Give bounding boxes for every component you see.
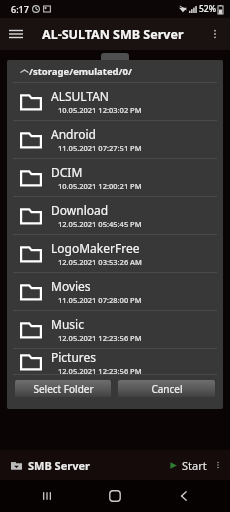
button[interactable]: Recent apps xyxy=(25,480,69,512)
staticText: 6:17 xyxy=(11,3,29,15)
staticText: 12.05.2021 05:45:45 PM xyxy=(58,219,142,229)
staticText: 12.05.2021 12:23:56 PM xyxy=(58,366,142,374)
staticText: Start xyxy=(182,458,207,473)
button[interactable]: Pictures xyxy=(7,349,223,374)
button[interactable]: ALSULTAN xyxy=(7,83,223,120)
button[interactable]: Download xyxy=(7,197,223,234)
button[interactable]: Cancel xyxy=(118,380,215,397)
staticText: 12.05.2021 12:23:56 PM xyxy=(58,333,142,343)
staticText: 11.05.2021 07:27:51 PM xyxy=(58,143,142,153)
button[interactable]: Home xyxy=(93,480,137,512)
button[interactable]: More options xyxy=(210,453,226,477)
button[interactable]: Movies xyxy=(7,273,223,310)
button[interactable]: Select Folder xyxy=(15,380,111,397)
button[interactable]: Back xyxy=(162,480,206,512)
staticText: Cancel xyxy=(151,382,183,396)
button[interactable]: Android xyxy=(7,121,223,158)
staticText: 11.05.2021 07:28:00 PM xyxy=(58,295,142,305)
button[interactable]: LogoMakerFree xyxy=(7,235,223,272)
staticText: Movies xyxy=(51,278,91,294)
staticText: 52% xyxy=(199,3,216,15)
staticText: Select Folder xyxy=(33,382,94,396)
button[interactable]: Start xyxy=(166,454,210,477)
staticText: Pictures xyxy=(51,349,97,365)
staticText: LogoMakerFree xyxy=(51,240,140,256)
staticText: 10.05.2021 12:00:21 PM xyxy=(58,181,142,191)
button[interactable]: Open navigation menu xyxy=(0,18,32,50)
staticText: SMB Server xyxy=(28,458,90,473)
staticText: 10.05.2021 12:03:02 PM xyxy=(58,105,142,115)
staticText: Music xyxy=(51,316,84,332)
staticText: 12.05.2021 03:53:26 AM xyxy=(58,257,142,267)
staticText: AL-SULTAN SMB Server xyxy=(42,26,184,43)
button[interactable]: DCIM xyxy=(7,159,223,196)
staticText: Android xyxy=(51,126,96,142)
staticText: DCIM xyxy=(51,164,83,180)
staticText: /storage/emulated/0/ xyxy=(29,65,132,78)
staticText: Download xyxy=(51,202,109,218)
button[interactable]: More options xyxy=(200,19,230,49)
staticText: ALSULTAN xyxy=(51,88,109,104)
button[interactable]: Music xyxy=(7,311,223,348)
